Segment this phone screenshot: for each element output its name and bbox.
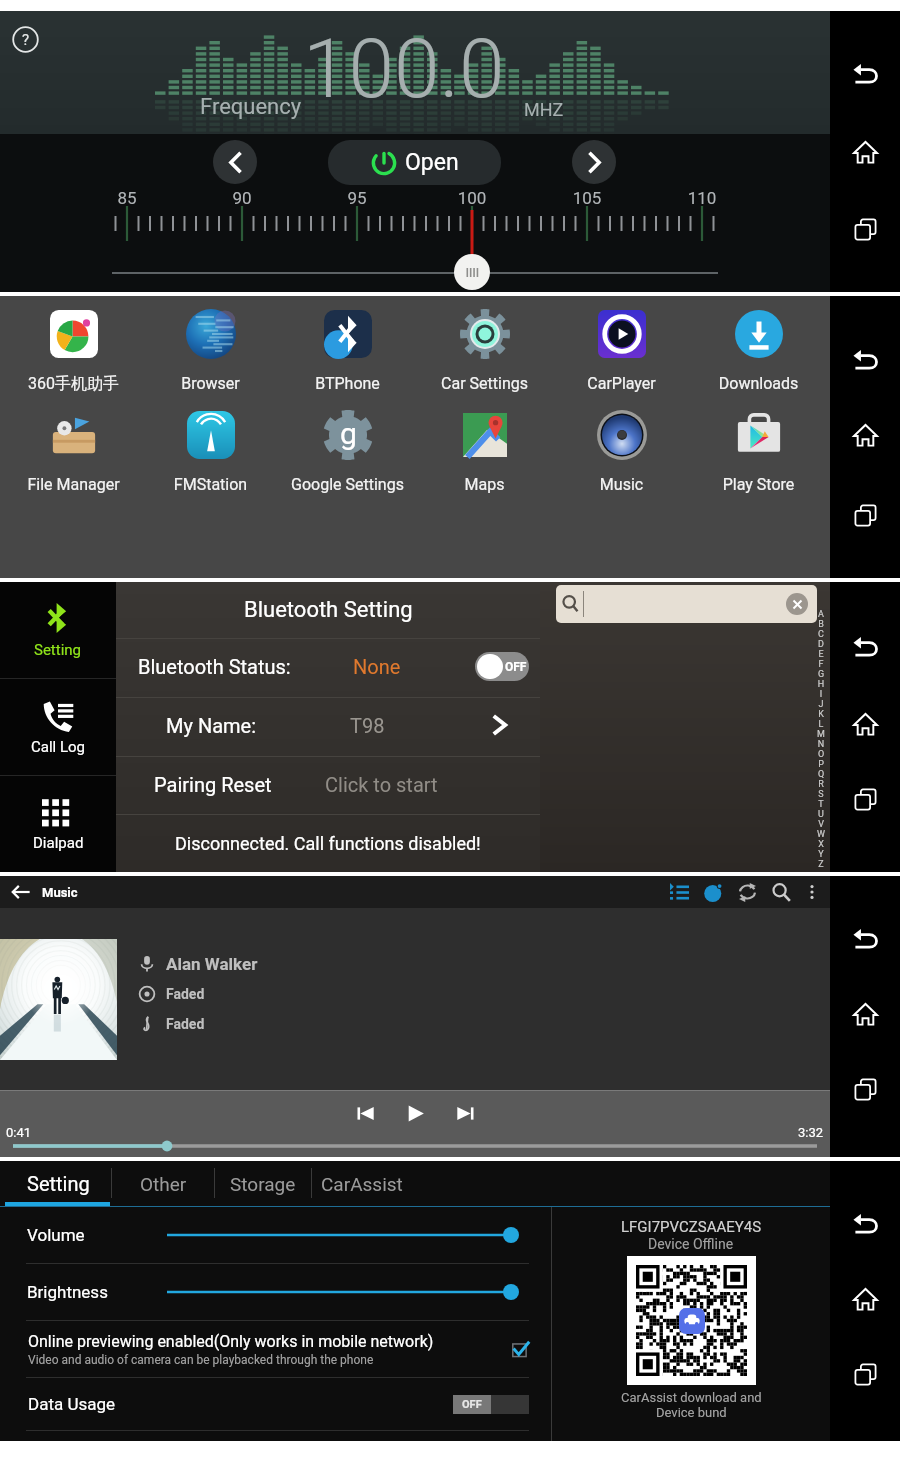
staticText: CarAssist bbox=[321, 1173, 403, 1195]
button[interactable]: Back bbox=[837, 332, 893, 388]
staticText: Setting bbox=[27, 1172, 90, 1195]
button[interactable]: Online previewing enabled(Only works in … bbox=[28, 1321, 529, 1377]
button[interactable]: Back bbox=[837, 911, 893, 967]
button[interactable]: Back bbox=[837, 46, 893, 102]
button[interactable] bbox=[556, 585, 817, 623]
button[interactable]: Recent apps bbox=[837, 771, 893, 827]
button[interactable]: Home bbox=[837, 407, 893, 463]
staticText: 90 bbox=[222, 188, 262, 208]
button[interactable] bbox=[116, 698, 540, 756]
staticText: 110 bbox=[682, 188, 722, 208]
staticText: CarAssist download and bbox=[621, 1390, 762, 1405]
button[interactable]: Help bbox=[12, 26, 39, 53]
staticText: Device Offline bbox=[648, 1236, 734, 1252]
staticText: ? bbox=[22, 31, 30, 49]
button[interactable]: Browser bbox=[142, 306, 279, 393]
button[interactable]: Back bbox=[837, 1196, 893, 1252]
staticText: OFF bbox=[462, 1398, 482, 1411]
button[interactable]: Playlist bbox=[662, 876, 696, 908]
staticText: Device bund bbox=[656, 1405, 727, 1420]
staticText: 105 bbox=[567, 188, 607, 208]
button[interactable]: Home bbox=[837, 696, 893, 752]
button[interactable] bbox=[116, 757, 540, 814]
staticText: 3:32 bbox=[798, 1125, 824, 1140]
button[interactable]: Call Log bbox=[0, 679, 116, 775]
staticText: MHZ bbox=[524, 99, 564, 120]
button[interactable] bbox=[167, 1280, 519, 1304]
button[interactable]: Storage bbox=[215, 1161, 311, 1206]
button[interactable]: Maps bbox=[416, 407, 553, 494]
button[interactable]: CarAssist bbox=[312, 1161, 412, 1206]
staticText: Disconnected. Call functions disabled! bbox=[175, 833, 481, 854]
button[interactable]: Back bbox=[837, 619, 893, 675]
button[interactable] bbox=[116, 639, 540, 697]
button[interactable]: 360手机助手 bbox=[5, 306, 142, 394]
button[interactable]: Recent apps bbox=[837, 1061, 893, 1117]
button[interactable]: Data Usage bbox=[28, 1378, 529, 1430]
button[interactable]: Next station bbox=[572, 140, 616, 184]
staticText: Dialpad bbox=[33, 834, 84, 852]
button[interactable]: Repeat bbox=[730, 876, 764, 908]
staticText: Open bbox=[405, 149, 459, 176]
button[interactable]: Car Settings bbox=[416, 306, 553, 393]
staticText: 100.0 bbox=[303, 21, 505, 117]
button[interactable]: Home bbox=[837, 124, 893, 180]
button[interactable]: Edit name bbox=[487, 712, 513, 738]
button[interactable]: File Manager bbox=[5, 407, 142, 494]
button[interactable]: Play bbox=[400, 1098, 430, 1128]
button[interactable]: Previous bbox=[350, 1098, 380, 1128]
button[interactable]: Tune bbox=[454, 254, 490, 290]
button[interactable]: Search bbox=[764, 876, 798, 908]
staticText: 95 bbox=[337, 188, 377, 208]
staticText: None bbox=[353, 655, 401, 678]
button[interactable]: CarPlayer bbox=[553, 306, 690, 393]
button[interactable]: Setting bbox=[6, 1161, 111, 1206]
staticText: Data Usage bbox=[28, 1394, 116, 1414]
staticText: 0:41 bbox=[6, 1125, 32, 1140]
staticText: File Manager bbox=[5, 475, 142, 494]
button[interactable]: Recent apps bbox=[837, 201, 893, 257]
staticText: Car Settings bbox=[416, 374, 553, 393]
staticText: OFF bbox=[505, 660, 527, 674]
staticText: A B C D E F G H I J K L M N O P Q R S T … bbox=[817, 609, 825, 869]
staticText: Call Log bbox=[31, 738, 85, 756]
staticText: Faded bbox=[166, 1016, 205, 1032]
staticText: Google Settings bbox=[279, 475, 416, 494]
button[interactable]: OFF bbox=[475, 652, 529, 681]
staticText: Setting bbox=[34, 641, 82, 659]
button[interactable]: Other bbox=[112, 1161, 214, 1206]
staticText: T98 bbox=[350, 714, 385, 737]
button[interactable]: FMStation bbox=[142, 407, 279, 494]
button[interactable]: Recent apps bbox=[837, 1346, 893, 1402]
button[interactable]: Dialpad bbox=[0, 776, 116, 872]
button[interactable]: Play Store bbox=[690, 407, 827, 494]
staticText: Volume bbox=[27, 1225, 85, 1245]
button[interactable]: Next bbox=[450, 1098, 480, 1128]
staticText: Bluetooth Setting bbox=[244, 597, 413, 623]
button[interactable]: Equalizer bbox=[696, 876, 730, 908]
staticText: Click to start bbox=[325, 773, 438, 796]
button[interactable]: Back bbox=[0, 876, 42, 908]
staticText: g bbox=[340, 416, 357, 451]
button[interactable]: Recent apps bbox=[837, 487, 893, 543]
button[interactable]: More options bbox=[798, 878, 826, 906]
button[interactable]: BTPhone bbox=[279, 306, 416, 393]
button[interactable]: Previous station bbox=[213, 140, 257, 184]
staticText: Faded bbox=[166, 986, 205, 1002]
button[interactable]: Open bbox=[328, 140, 501, 185]
staticText: Storage bbox=[230, 1173, 296, 1195]
button[interactable]: Home bbox=[837, 1271, 893, 1327]
button[interactable]: Downloads bbox=[690, 306, 827, 393]
staticText: Video and audio of camera can be playbac… bbox=[28, 1353, 374, 1367]
button[interactable] bbox=[167, 1223, 519, 1247]
staticText: Other bbox=[140, 1173, 187, 1195]
button[interactable]: Home bbox=[837, 986, 893, 1042]
button[interactable]: Music bbox=[553, 407, 690, 494]
staticText: Brightness bbox=[27, 1282, 108, 1302]
button[interactable]: Setting bbox=[0, 582, 116, 678]
staticText: Music bbox=[553, 475, 690, 494]
staticText: 360手机助手 bbox=[5, 374, 142, 394]
staticText: CarPlayer bbox=[553, 374, 690, 393]
staticText: Online previewing enabled(Only works in … bbox=[28, 1332, 434, 1351]
button[interactable]: g bbox=[279, 407, 416, 494]
